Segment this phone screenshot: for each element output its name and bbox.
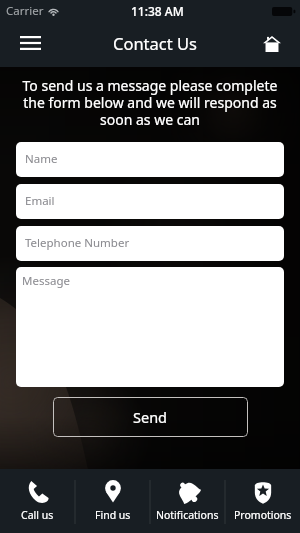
- staticText: Promotions: [234, 508, 292, 522]
- staticText: Telephone Number: [25, 235, 130, 251]
- staticText: Notifications: [156, 508, 219, 522]
- button[interactable]: Send: [53, 397, 248, 437]
- button[interactable]: Find us: [75, 469, 150, 533]
- button[interactable]: Home: [252, 25, 292, 65]
- button[interactable]: Promotions: [225, 469, 300, 533]
- button[interactable]: Notifications: [150, 469, 225, 533]
- button[interactable]: Message: [16, 267, 284, 387]
- button[interactable]: Call us: [0, 469, 75, 533]
- staticText: Message: [22, 273, 70, 289]
- button[interactable]: Name: [16, 142, 284, 177]
- staticText: Carrier: [6, 3, 44, 19]
- staticText: To send us a message please complete the…: [21, 76, 279, 129]
- staticText: Contact Us: [113, 32, 197, 54]
- staticText: Email: [25, 193, 55, 209]
- button[interactable]: Email: [16, 184, 284, 219]
- staticText: Name: [25, 151, 58, 167]
- staticText: Find us: [95, 508, 131, 522]
- staticText: Call us: [21, 508, 54, 522]
- button[interactable]: Telephone Number: [16, 226, 284, 261]
- staticText: 11:38 AM: [131, 3, 184, 19]
- button[interactable]: Menu: [10, 25, 50, 65]
- staticText: Send: [133, 407, 168, 427]
